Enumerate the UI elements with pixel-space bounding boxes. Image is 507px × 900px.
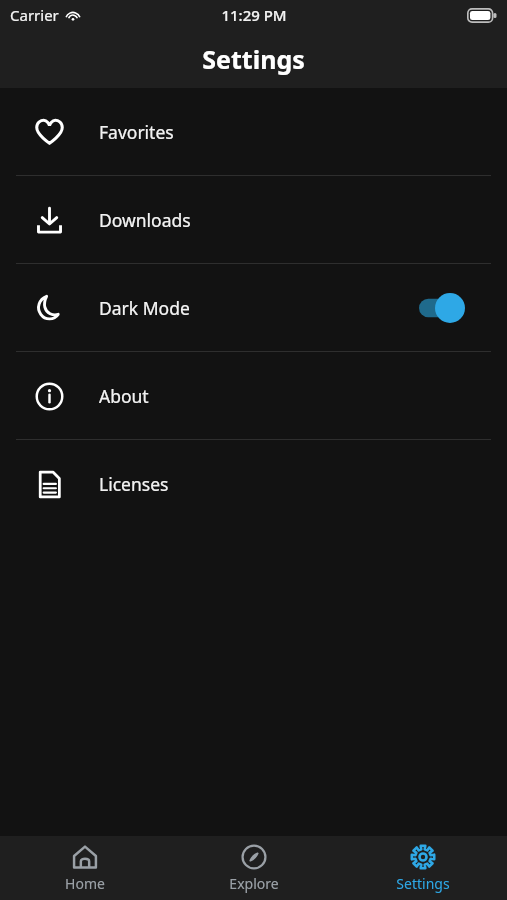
button[interactable]: Settings <box>338 836 507 900</box>
staticText: Explore <box>229 874 279 893</box>
button[interactable]: Home <box>0 836 169 900</box>
button[interactable]: Downloads <box>0 176 507 264</box>
staticText: Licenses <box>99 472 169 496</box>
staticText: Home <box>65 874 105 893</box>
staticText: 11:29 PM <box>221 5 287 25</box>
button[interactable]: About <box>0 352 507 440</box>
button[interactable]: Dark Mode <box>0 264 507 352</box>
staticText: Dark Mode <box>99 296 190 320</box>
staticText: Favorites <box>99 120 174 144</box>
staticText: Carrier <box>10 5 59 25</box>
button[interactable]: Explore <box>169 836 338 900</box>
staticText: Settings <box>202 42 305 76</box>
button[interactable]: Dark Mode toggle <box>419 293 465 323</box>
staticText: Settings <box>396 874 450 893</box>
staticText: About <box>99 384 149 408</box>
staticText: Downloads <box>99 208 191 232</box>
button[interactable]: Favorites <box>0 88 507 176</box>
button[interactable]: Licenses <box>0 440 507 528</box>
